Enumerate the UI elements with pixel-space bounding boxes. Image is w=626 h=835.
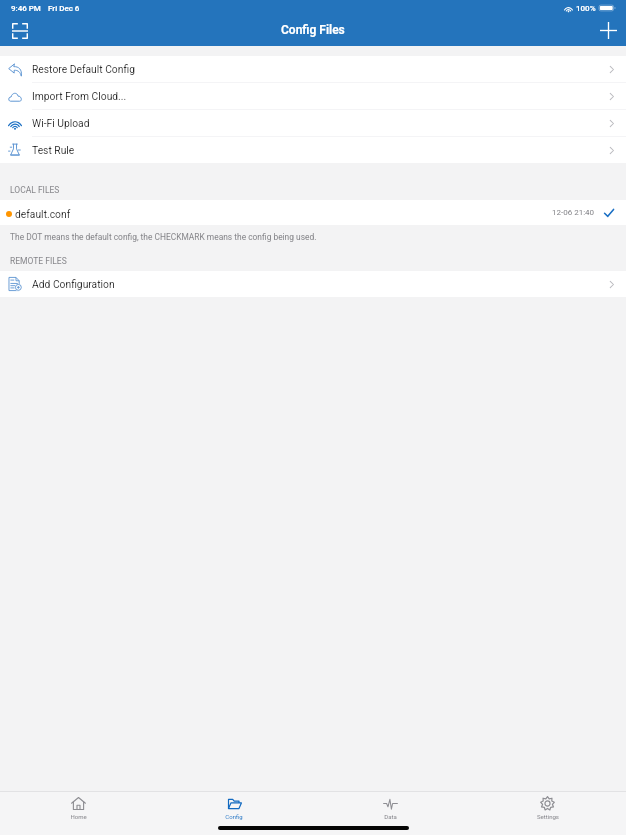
staticText: Add Configuration (32, 278, 115, 290)
button[interactable]: Wi-Fi Upload (0, 110, 626, 137)
staticText: Data (384, 813, 397, 820)
button[interactable]: Home (0, 792, 156, 823)
staticText: 9:46 PM (11, 4, 41, 13)
staticText: Config Files (281, 23, 345, 37)
staticText: 100% (576, 4, 596, 13)
staticText: Settings (537, 813, 559, 820)
button[interactable]: Add Configuration (0, 271, 626, 297)
button[interactable]: Settings (469, 792, 626, 823)
staticText: Fri Dec 6 (48, 4, 80, 13)
staticText: LOCAL FILES (10, 185, 60, 195)
staticText: Wi-Fi Upload (32, 117, 90, 129)
button[interactable]: Test Rule (0, 137, 626, 163)
button[interactable]: Restore Default Config (0, 56, 626, 83)
button[interactable]: Import From Cloud... (0, 83, 626, 110)
staticText: 12-06 21:40 (552, 208, 595, 217)
button[interactable]: Data (312, 792, 469, 823)
staticText: Restore Default Config (32, 63, 135, 75)
staticText: Test Rule (32, 144, 75, 156)
staticText: Config (225, 813, 243, 820)
button[interactable]: default.conf (0, 200, 626, 225)
staticText: REMOTE FILES (10, 256, 67, 266)
button[interactable]: Config (156, 792, 312, 823)
staticText: Home (70, 813, 87, 820)
staticText: default.conf (15, 208, 71, 220)
staticText: The DOT means the default config, the CH… (10, 232, 317, 242)
button[interactable]: Scan QR code (7, 18, 33, 44)
button[interactable]: Add configuration (594, 16, 622, 44)
staticText: Import From Cloud... (32, 90, 127, 102)
